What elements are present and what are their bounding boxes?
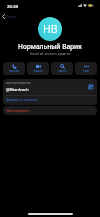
staticText: @Bitardosch	[6, 87, 29, 92]
button[interactable]: Заблокировать	[3, 106, 97, 115]
staticText: поиск	[58, 69, 67, 73]
staticText: звонок	[9, 69, 20, 73]
button[interactable]: QR code	[88, 84, 94, 90]
staticText: Чаты	[6, 14, 16, 19]
button[interactable]: ещё	[75, 62, 97, 75]
staticText: имя пользователя	[6, 81, 31, 85]
staticText: 20:38	[7, 3, 18, 9]
staticText: Нормальный Варик	[18, 42, 82, 51]
staticText: Добавить в контакты	[6, 98, 38, 102]
staticText: HB	[43, 22, 58, 36]
staticText: ещё	[83, 69, 89, 73]
staticText: видео	[34, 69, 43, 73]
staticText: Заблокировать	[6, 109, 30, 113]
button[interactable]: Добавить в контакты	[3, 96, 97, 105]
button[interactable]: поиск	[51, 62, 73, 75]
button[interactable]: звонок	[3, 62, 25, 75]
button[interactable]: Back	[1, 13, 17, 20]
staticText: был(а) очень давно	[30, 50, 71, 56]
button[interactable]: видео	[27, 62, 49, 75]
button[interactable]: имя пользователя	[3, 79, 97, 95]
